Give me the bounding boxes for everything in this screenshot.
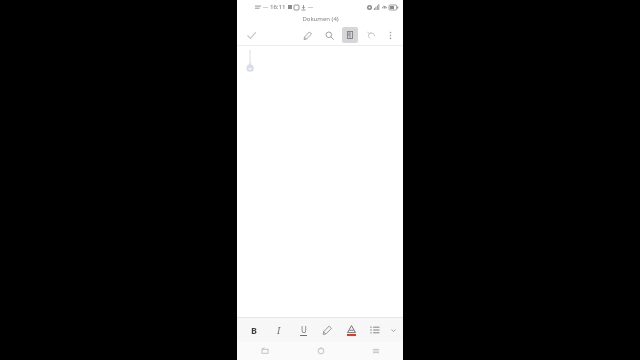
staticText: I (277, 324, 281, 336)
button[interactable]: Bulleted list (363, 318, 387, 342)
button[interactable]: More formatting (387, 318, 399, 342)
button[interactable]: View mode (342, 27, 358, 43)
button[interactable]: More options (382, 27, 398, 43)
button[interactable]: Home (293, 342, 348, 360)
button[interactable]: Undo (362, 26, 380, 44)
button[interactable]: Text color (339, 318, 363, 342)
staticText: 16:11 (270, 3, 286, 11)
staticText: U (301, 324, 307, 335)
staticText: Dokumen (4) (302, 15, 339, 23)
button[interactable]: Highlight (315, 318, 339, 342)
button[interactable]: Italic (266, 318, 291, 342)
button[interactable]: Underline (291, 318, 315, 342)
button[interactable]: Recents (348, 342, 403, 360)
button[interactable]: Bold (241, 318, 266, 342)
button[interactable]: Done (242, 26, 260, 44)
button[interactable]: Search (320, 26, 338, 44)
button[interactable]: Draw (298, 26, 316, 44)
staticText: B (251, 324, 257, 336)
button[interactable]: Back (237, 342, 293, 360)
